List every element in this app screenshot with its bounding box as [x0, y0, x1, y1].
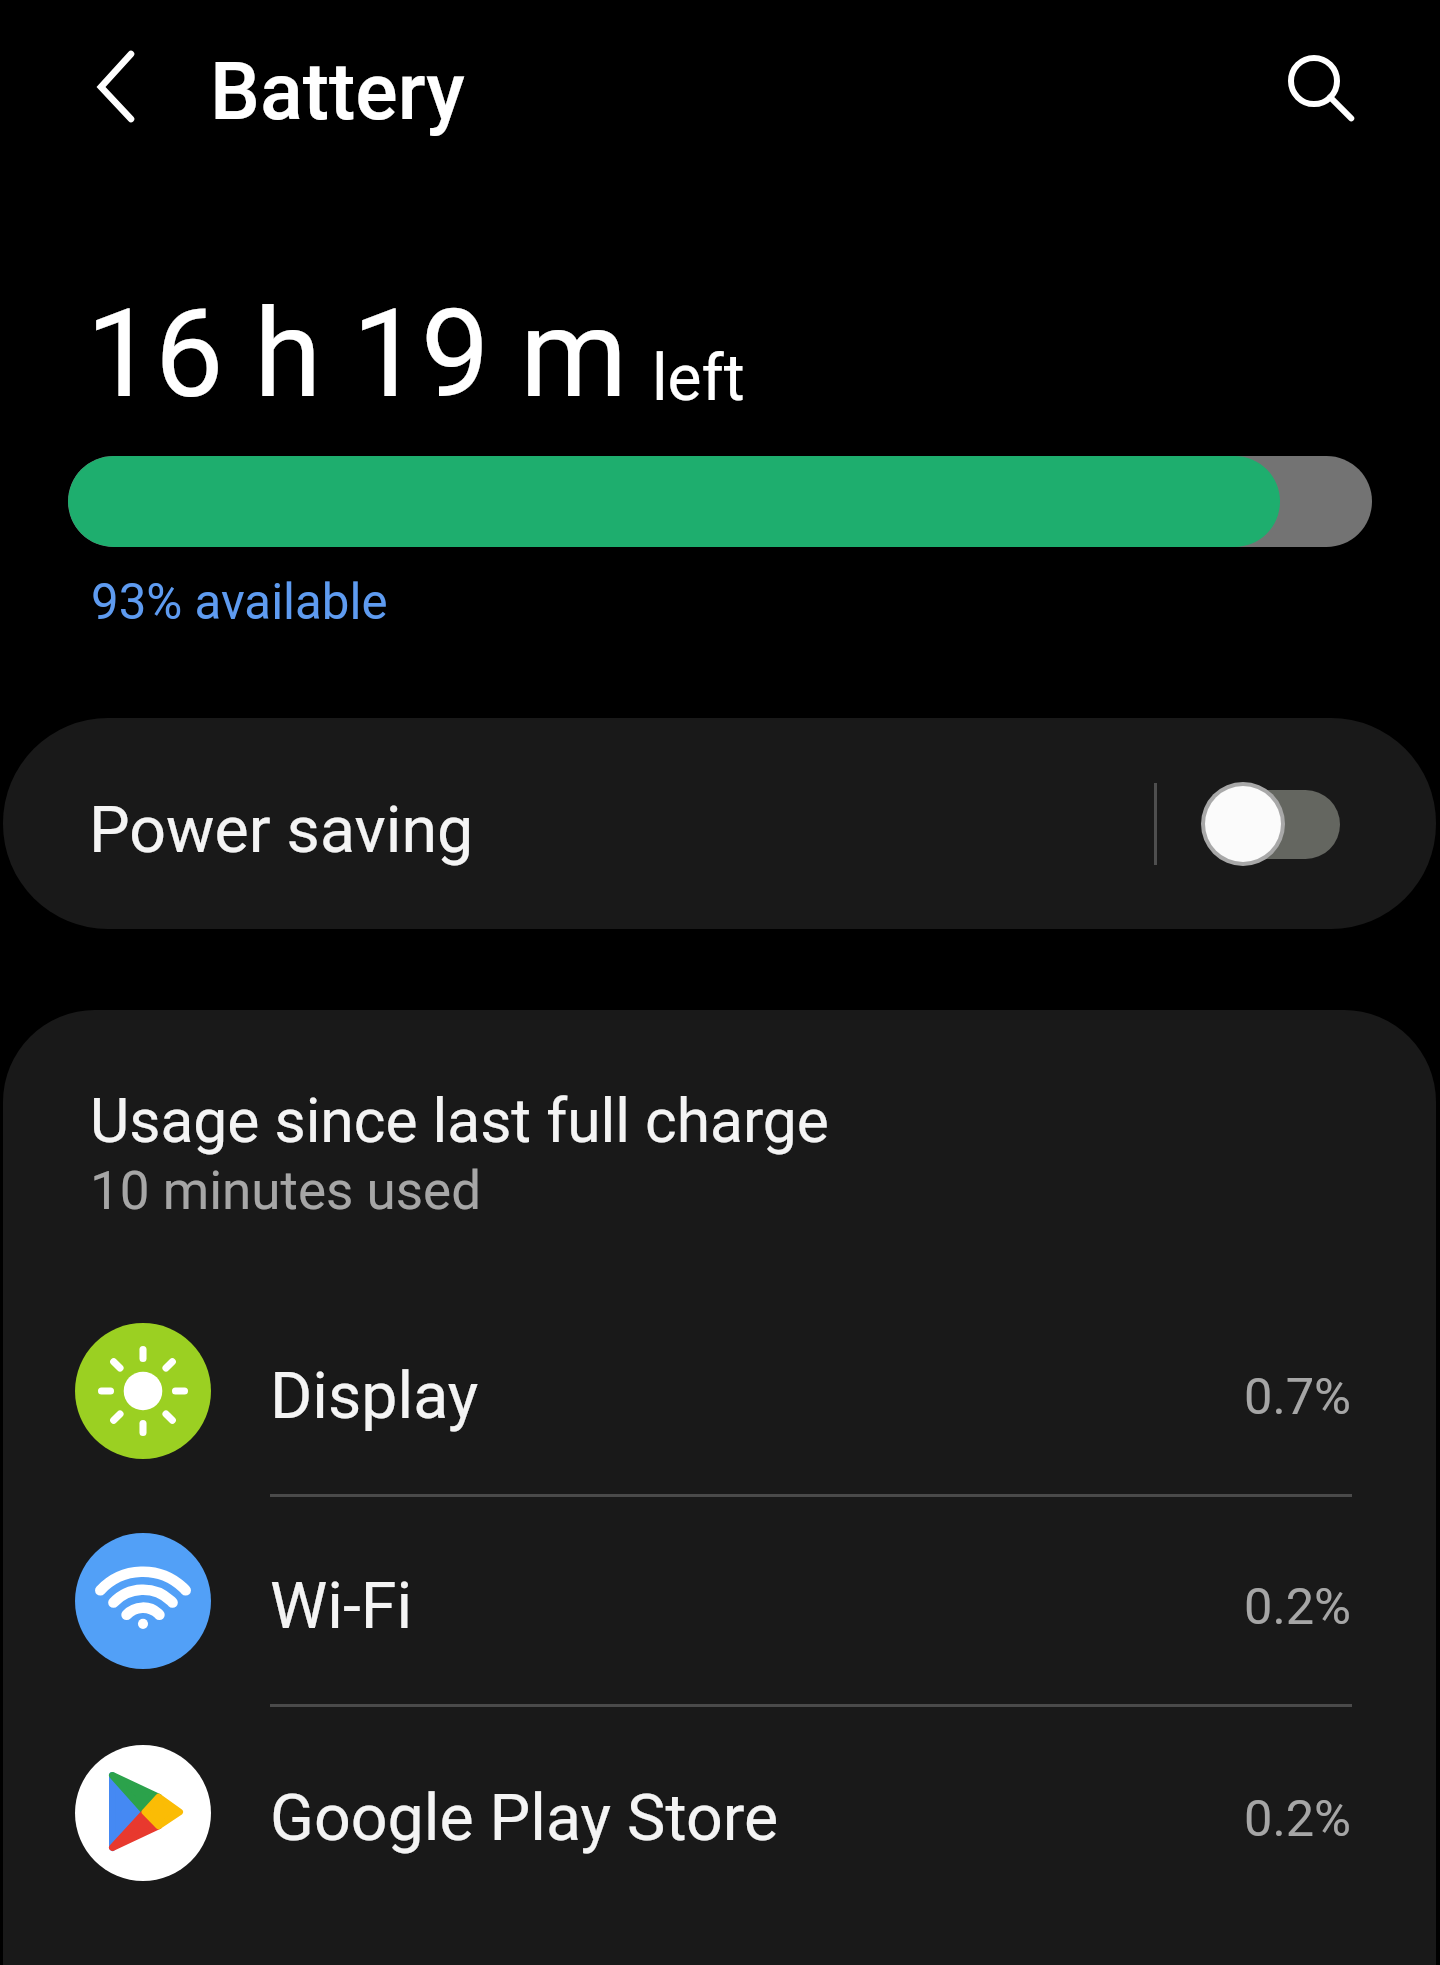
staticText: 16 h 19 m	[86, 282, 628, 426]
staticText: Power saving	[89, 792, 474, 868]
staticText: left	[652, 341, 745, 416]
staticText: Usage since last full charge	[90, 1086, 829, 1157]
button[interactable]: Power saving	[3, 718, 1436, 929]
button[interactable]: Display	[3, 1291, 1436, 1491]
staticText: 93% available	[91, 573, 388, 631]
button[interactable]: Search	[1266, 33, 1362, 129]
staticText: Display	[270, 1358, 479, 1434]
button[interactable]: Power saving off	[1189, 769, 1354, 879]
staticText: 0.7%	[1244, 1367, 1352, 1426]
staticText: Wi-Fi	[270, 1568, 413, 1644]
button[interactable]: Navigate up	[53, 33, 149, 129]
button[interactable]: Google Play Store	[3, 1713, 1436, 1913]
staticText: 0.2%	[1244, 1577, 1352, 1636]
staticText: 10 minutes used	[90, 1160, 482, 1222]
button[interactable]: Wi-Fi	[3, 1501, 1436, 1701]
staticText: Battery	[210, 46, 465, 139]
staticText: 0.2%	[1244, 1789, 1352, 1848]
staticText: Google Play Store	[270, 1780, 779, 1856]
